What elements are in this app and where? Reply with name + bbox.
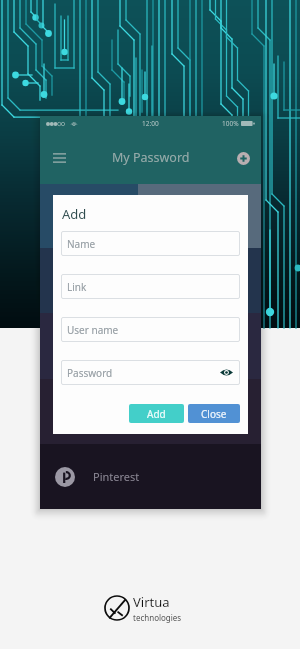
staticText: Virtua [133,593,170,611]
staticText: Pinterest [93,469,140,484]
other: Show password [220,368,233,377]
staticText: Name [67,237,96,251]
staticText: technologies [133,612,182,623]
button[interactable]: Link [61,274,240,299]
button[interactable] [40,248,261,313]
button[interactable]: Close [188,404,240,423]
button[interactable]: User name [61,317,240,342]
staticText: Link [67,280,87,294]
button[interactable]: Menu [45,144,73,172]
staticText: Close [201,407,227,421]
button[interactable] [40,184,261,248]
staticText: My Password [112,149,190,166]
staticText: Add [147,407,166,421]
staticText: 12:00 [142,119,159,128]
button[interactable]: Add password [232,147,254,169]
staticText: User name [67,323,119,337]
button[interactable] [40,379,261,444]
button[interactable]: Password [61,360,240,385]
staticText: 100% [222,119,239,128]
button[interactable]: Add [129,404,184,423]
button[interactable]: Pinterest [40,444,261,509]
staticText: Password [67,366,113,380]
button[interactable] [40,313,261,379]
button[interactable]: Name [61,231,240,256]
staticText: Add [62,205,87,223]
